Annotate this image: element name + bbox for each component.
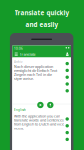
button[interactable]: Menu (14, 51, 18, 57)
button[interactable]: Translate (65, 138, 69, 141)
button[interactable]: Translate (65, 89, 69, 92)
staticText: Nach dieser application (14, 64, 53, 69)
button[interactable]: Translate (65, 82, 69, 86)
staticText: and easily (25, 20, 58, 29)
button[interactable]: Translate (65, 124, 69, 127)
button[interactable]: Speak (47, 102, 53, 108)
staticText: Ziegeln nach Teil in die (14, 72, 52, 77)
button[interactable]: Translate (65, 131, 69, 134)
button[interactable]: Account (14, 51, 69, 57)
button[interactable]: Translate (65, 69, 69, 72)
staticText: versa. (14, 126, 24, 131)
staticText: With the application you can (14, 114, 60, 119)
staticText: Englisch (14, 108, 26, 112)
button[interactable]: Play translation (37, 102, 44, 108)
button[interactable]: Translate (65, 117, 69, 121)
staticText: Archiv (14, 60, 22, 64)
staticText: ermöglicht dir Einfach Text (14, 68, 57, 73)
staticText: from English to Dutch and vice (14, 122, 64, 127)
button[interactable]: Translate (20, 51, 36, 57)
button[interactable]: Translate (65, 62, 69, 65)
staticText: styre weise. (14, 76, 34, 81)
staticText: 10:06 (14, 46, 23, 51)
staticText: Translate quickly (14, 8, 69, 17)
button[interactable]: Translate (65, 75, 69, 79)
staticText: translate words and sentences (14, 118, 64, 123)
staticText: Translate (20, 51, 36, 57)
